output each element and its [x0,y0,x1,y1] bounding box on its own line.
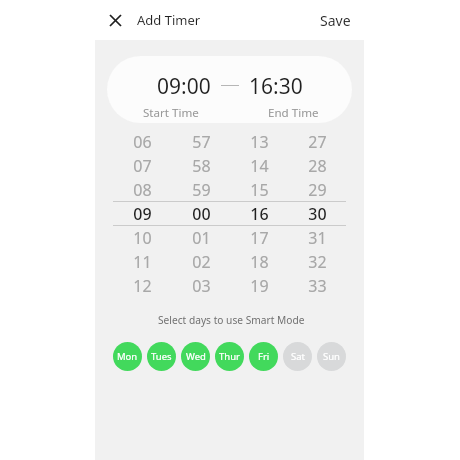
staticText: Select days to use Smart Mode [158,313,305,327]
staticText: Wed [186,350,206,363]
staticText: 09 [133,203,152,225]
staticText: 57 [192,131,211,153]
button[interactable]: Wed [181,342,210,371]
staticText: 00 [192,203,211,225]
button[interactable]: 27 [288,130,346,298]
button[interactable]: 13 [230,130,288,298]
staticText: 13 [250,131,269,153]
button[interactable]: Sat [283,342,312,371]
staticText: 03 [192,275,211,297]
staticText: 33 [308,275,327,297]
staticText: Tues [151,350,172,363]
button[interactable]: Tues [147,342,176,371]
button[interactable]: Start time 09:00 [107,56,229,123]
staticText: 19 [250,275,269,297]
staticText: 15 [250,179,269,201]
staticText: Save [320,11,351,30]
button[interactable]: 06 [113,130,172,298]
staticText: 16 [250,203,269,225]
staticText: Mon [117,350,138,363]
button[interactable]: Fri [249,342,278,371]
staticText: End Time [268,105,319,121]
staticText: Add Timer [137,11,201,29]
staticText: 31 [308,227,327,249]
staticText: 07 [133,155,152,177]
staticText: 14 [250,155,269,177]
staticText: 01 [192,227,211,249]
staticText: 27 [308,131,327,153]
staticText: 28 [308,155,327,177]
button[interactable]: 57 [172,130,230,298]
staticText: 17 [250,227,269,249]
staticText: Thur [219,350,240,363]
staticText: Sun [323,350,340,363]
button[interactable]: Thur [215,342,244,371]
button[interactable]: End time 16:30 [229,56,352,123]
staticText: 09:00 [157,72,211,101]
staticText: 12 [133,275,152,297]
staticText: 59 [192,179,211,201]
staticText: 10 [133,227,152,249]
button[interactable]: Mon [113,342,142,371]
staticText: 32 [308,251,327,273]
staticText: 16:30 [249,72,303,101]
button[interactable]: Close [104,9,127,32]
staticText: 06 [133,131,152,153]
staticText: 58 [192,155,211,177]
staticText: 29 [308,179,327,201]
button[interactable]: Save [315,5,356,36]
staticText: 30 [308,203,327,225]
staticText: Start Time [143,105,199,121]
staticText: Fri [258,350,270,363]
button[interactable]: Sun [317,342,346,371]
staticText: 02 [192,251,211,273]
staticText: 08 [133,179,152,201]
staticText: Sat [291,350,305,363]
staticText: 11 [133,251,152,273]
staticText: 18 [250,251,269,273]
